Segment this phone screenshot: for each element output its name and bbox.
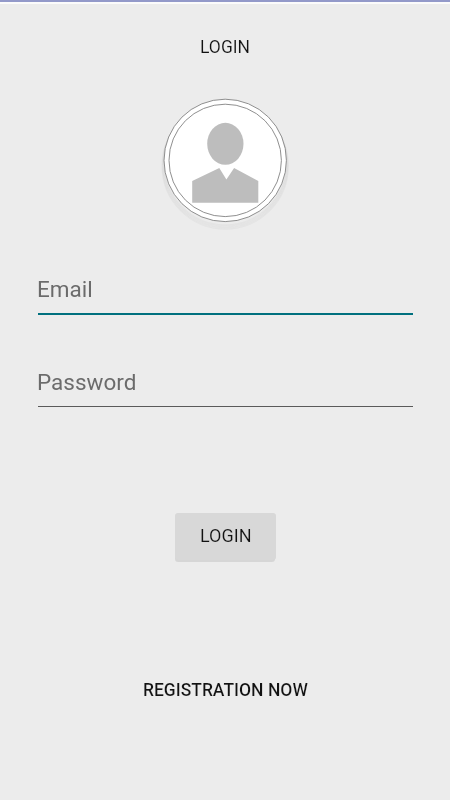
button[interactable]: LOGIN (175, 513, 276, 560)
button[interactable]: Profile photo (155, 90, 295, 230)
staticText: Password (37, 369, 137, 395)
button[interactable]: Password (38, 369, 413, 409)
staticText: Email (37, 276, 93, 302)
button[interactable]: Email (38, 276, 413, 317)
staticText: LOGIN (200, 525, 252, 546)
staticText: LOGIN (200, 37, 251, 58)
button[interactable]: REGISTRATION NOW (133, 675, 318, 706)
staticText: REGISTRATION NOW (143, 680, 308, 701)
